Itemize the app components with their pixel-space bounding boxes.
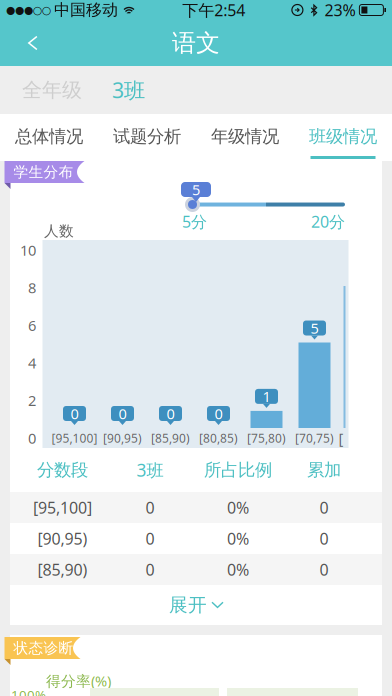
staticText: [90,95) <box>37 528 87 549</box>
staticText: [70,75) <box>295 430 334 446</box>
staticText: 学生分布 <box>13 163 73 181</box>
staticText: 0 <box>145 559 154 580</box>
staticText: 0 <box>118 404 126 423</box>
staticText: 班级情况 <box>309 126 377 147</box>
staticText: 100% <box>11 686 46 696</box>
staticText: 下午2:54 <box>182 0 245 21</box>
staticText: [90,95) <box>103 430 142 446</box>
staticText: 全年级 <box>22 78 82 102</box>
staticText: 累加 <box>307 459 341 481</box>
staticText: 5分 <box>182 211 207 232</box>
button[interactable]: Back <box>12 20 56 66</box>
staticText: [95,100] <box>51 430 97 446</box>
staticText: 0 <box>319 559 328 580</box>
staticText: [80,85) <box>199 430 238 446</box>
staticText: 5 <box>310 318 318 338</box>
staticText: [85,90) <box>37 559 87 580</box>
staticText: 0 <box>214 404 222 423</box>
staticText: 23% <box>324 0 355 21</box>
button[interactable]: 年级情况 <box>196 114 294 161</box>
staticText: 0% <box>227 559 249 580</box>
staticText: 所占比例 <box>204 459 272 481</box>
staticText: [85,90) <box>151 430 190 446</box>
staticText: [95,100] <box>33 497 92 518</box>
staticText: 得分率(%) <box>46 671 111 690</box>
staticText: 0 <box>28 428 36 448</box>
staticText: [75,80) <box>247 430 286 446</box>
staticText: 0 <box>166 404 174 423</box>
staticText: 语文 <box>172 28 220 58</box>
staticText: ○○ <box>33 4 51 16</box>
staticText: 0 <box>70 404 78 423</box>
staticText: 年级情况 <box>211 126 279 147</box>
staticText: 1 <box>262 387 270 406</box>
staticText: 0% <box>227 497 249 518</box>
staticText: 0 <box>145 497 154 518</box>
button[interactable]: 班级情况 <box>294 114 392 161</box>
button[interactable]: 试题分析 <box>98 114 196 161</box>
staticText: 20分 <box>311 211 345 232</box>
staticText: 4 <box>28 353 36 373</box>
staticText: 0 <box>145 528 154 549</box>
button[interactable]: 总体情况 <box>0 114 98 161</box>
staticText: 试题分析 <box>113 126 181 147</box>
staticText: 10 <box>20 240 36 260</box>
staticText: ●●● <box>6 4 33 16</box>
button[interactable]: 展开 <box>10 585 382 625</box>
staticText: 3班 <box>136 458 163 481</box>
staticText: [ <box>338 428 343 448</box>
staticText: 0% <box>227 528 249 549</box>
staticText: 状态诊断 <box>13 639 73 657</box>
staticText: 3班 <box>112 76 145 104</box>
staticText: 中国移动 <box>54 0 118 20</box>
staticText: 0 <box>319 528 328 549</box>
staticText: 总体情况 <box>15 126 83 147</box>
button[interactable]: 全年级 <box>16 66 88 114</box>
staticText: 8 <box>28 278 36 297</box>
staticText: 5 <box>192 180 200 199</box>
staticText: 2 <box>28 391 36 410</box>
staticText: 6 <box>28 315 36 335</box>
staticText: 人数 <box>44 222 74 240</box>
staticText: 展开 <box>169 593 207 616</box>
button[interactable]: 3班 <box>106 66 151 114</box>
staticText: 0 <box>319 497 328 518</box>
staticText: 分数段 <box>37 459 88 481</box>
